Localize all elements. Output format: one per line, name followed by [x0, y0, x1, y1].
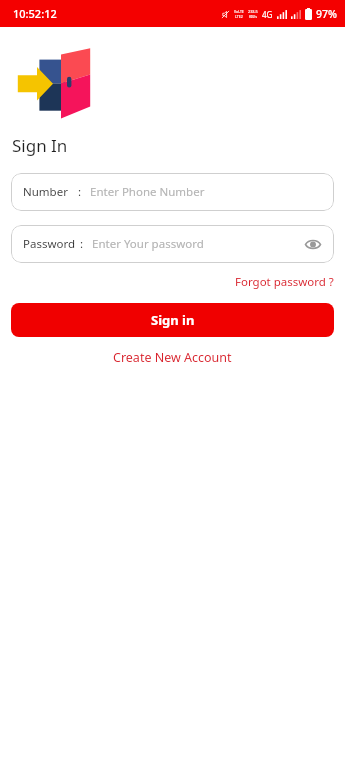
- staticText: :: [78, 184, 82, 200]
- staticText: 4G: [262, 9, 273, 20]
- button[interactable]: Password: [11, 225, 334, 263]
- staticText: 233.5: [248, 9, 258, 14]
- staticText: Sign in: [151, 311, 195, 329]
- staticText: Sign In: [12, 134, 68, 157]
- button[interactable]: Number: [11, 173, 334, 211]
- staticText: Password: [23, 236, 76, 252]
- button[interactable]: Create New Account: [101, 346, 244, 369]
- button[interactable]: Show password: [302, 233, 324, 255]
- staticText: Forgot password ?: [235, 274, 334, 290]
- button[interactable]: Sign in: [11, 303, 334, 337]
- staticText: VoLTE: [234, 9, 244, 14]
- staticText: KB/s: [249, 14, 258, 19]
- staticText: 10:52:12: [13, 6, 57, 21]
- staticText: :: [80, 236, 84, 252]
- staticText: LTE2: [235, 14, 243, 19]
- staticText: Enter Phone Number: [90, 184, 205, 200]
- staticText: Number: [23, 184, 68, 200]
- staticText: Create New Account: [113, 349, 232, 366]
- staticText: 97%: [316, 7, 337, 21]
- button[interactable]: Forgot password ?: [224, 272, 345, 292]
- staticText: Enter Your password: [92, 236, 204, 252]
